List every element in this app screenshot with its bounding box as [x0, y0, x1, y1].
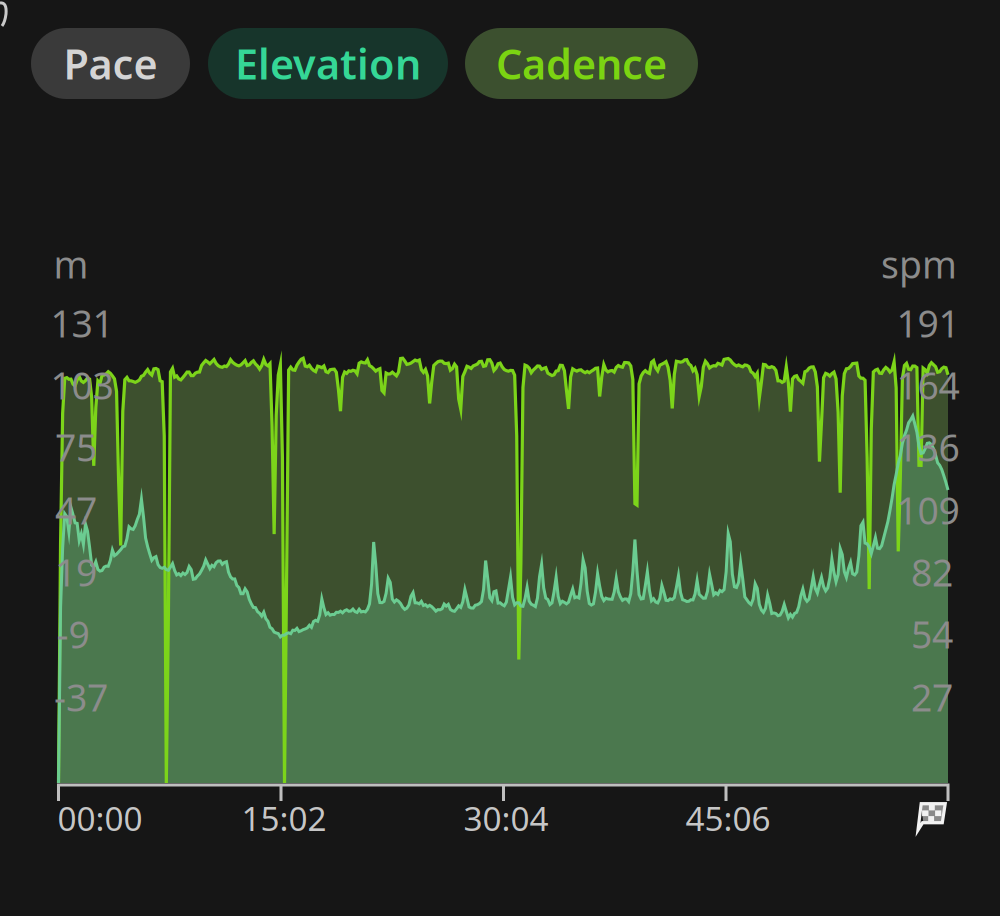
- button[interactable]: Finish: [915, 800, 949, 833]
- staticText: 75: [55, 422, 97, 472]
- staticText: 109: [896, 485, 959, 535]
- staticText: -37: [54, 672, 108, 722]
- staticText: Pace: [63, 36, 157, 91]
- staticText: Cadence: [496, 36, 667, 91]
- staticText: m: [53, 239, 88, 289]
- staticText: 27: [911, 672, 953, 722]
- staticText: 103: [50, 360, 113, 410]
- staticText: 54: [911, 609, 953, 659]
- staticText: 47: [55, 485, 97, 535]
- staticText: 82: [911, 547, 953, 597]
- staticText: 45:06: [685, 796, 770, 840]
- button[interactable]: Cadence: [465, 28, 698, 99]
- staticText: 15:02: [241, 796, 326, 840]
- staticText: 191: [896, 298, 959, 348]
- staticText: -9: [56, 609, 89, 659]
- staticText: spm: [881, 239, 957, 289]
- staticText: 00:00: [57, 796, 142, 840]
- staticText: Elevation: [235, 36, 421, 91]
- button[interactable]: Elevation: [208, 28, 448, 99]
- staticText: 136: [896, 422, 959, 472]
- staticText: 30:04: [463, 796, 548, 840]
- staticText: 164: [896, 360, 959, 410]
- staticText: 19: [55, 547, 97, 597]
- staticText: 131: [50, 298, 113, 348]
- button[interactable]: Pace: [31, 28, 190, 99]
